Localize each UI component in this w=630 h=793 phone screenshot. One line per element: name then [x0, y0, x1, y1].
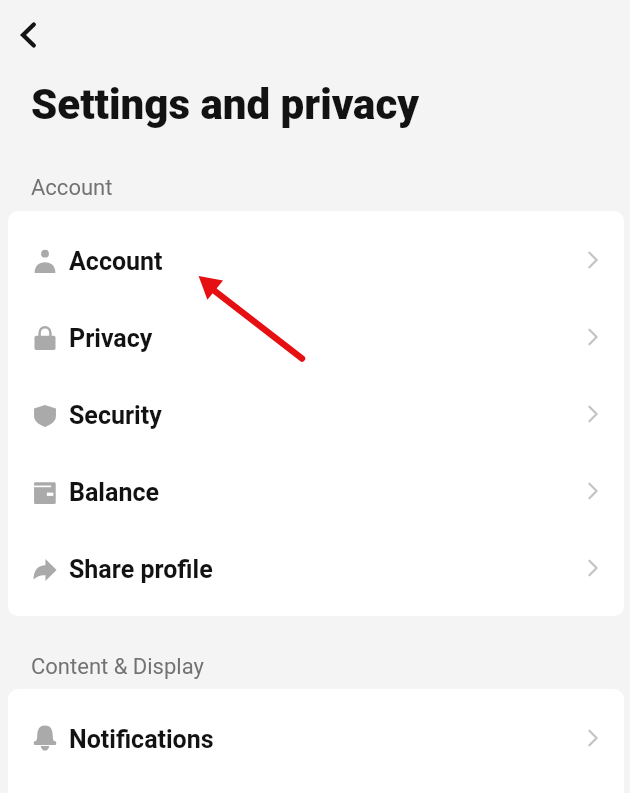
staticText: Settings and privacy	[31, 80, 419, 129]
staticText: Balance	[69, 478, 159, 507]
staticText: Content & Display	[31, 654, 204, 680]
staticText: Security	[69, 401, 162, 430]
button[interactable]: Notifications	[8, 699, 624, 776]
button[interactable]: Balance	[8, 452, 624, 529]
staticText: Account	[31, 175, 113, 201]
staticText: Notifications	[69, 725, 214, 754]
button[interactable]: Share profile	[8, 529, 624, 606]
staticText: Account	[69, 247, 163, 276]
button[interactable]: Security	[8, 375, 624, 452]
button[interactable]: Back	[5, 11, 53, 59]
staticText: Privacy	[69, 324, 153, 353]
staticText: Share profile	[69, 555, 213, 584]
button[interactable]: Privacy	[8, 298, 624, 375]
button[interactable]: Account	[8, 221, 624, 298]
